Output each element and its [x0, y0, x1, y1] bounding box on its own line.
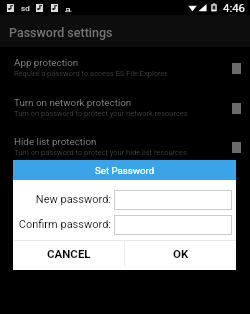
button[interactable]: Hide list protection — [0, 128, 250, 162]
button[interactable]: Confirm password: — [114, 215, 232, 235]
staticText: OK — [173, 247, 189, 260]
staticText: Require a password to access ES File Exp… — [14, 69, 168, 78]
staticText: Password settings — [9, 25, 113, 40]
staticText: New password: — [13, 193, 111, 206]
staticText: 4:46 — [223, 1, 245, 14]
staticText: CANCEL — [47, 247, 91, 260]
staticText: Turn on network protection — [14, 97, 132, 108]
button[interactable]: CANCEL — [13, 241, 124, 270]
button[interactable]: OK — [125, 241, 236, 270]
staticText: a — [65, 2, 72, 12]
button[interactable]: New password: — [114, 190, 232, 210]
staticText: Turn on password to protect your hide li… — [14, 148, 187, 157]
staticText: Turn on password to protect your network… — [14, 109, 188, 118]
button[interactable]: App protection — [0, 49, 250, 83]
staticText: sd — [21, 4, 30, 13]
button[interactable]: Turn on network protection — [0, 89, 250, 123]
staticText: Hide list protection — [14, 136, 97, 147]
staticText: Set Password — [95, 165, 155, 176]
staticText: App protection — [14, 57, 79, 68]
staticText: Confirm password: — [13, 218, 111, 231]
